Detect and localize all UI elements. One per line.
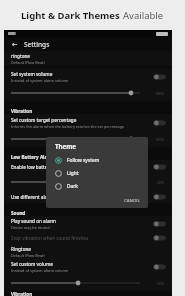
button[interactable]: Enable low battery alarm (4, 160, 172, 174)
button[interactable]: ringtone (4, 51, 172, 66)
button[interactable]: Play sound on alarm (4, 216, 172, 232)
staticText: Play sound on alarm (11, 218, 56, 224)
button[interactable]: Light (46, 167, 148, 180)
staticText: Vibration (11, 291, 33, 296)
staticText: Theme (55, 142, 77, 150)
staticText: Use different alarm (11, 194, 54, 200)
staticText: Low Battery Alarm (11, 154, 54, 160)
staticText: Device may be muted (11, 225, 50, 230)
staticText: Set custom target percentage (11, 117, 77, 123)
staticText: Default (Flow Beat) (11, 60, 45, 65)
button[interactable]: 20% (4, 174, 172, 190)
staticText: Stop vibration when sound finishes (11, 235, 89, 241)
button[interactable]: Back (9, 39, 19, 49)
staticText: Sound (11, 210, 26, 216)
staticText: 50% (157, 281, 165, 286)
staticText: Default (Flow Beat) (11, 253, 45, 258)
button[interactable]: 50% (4, 275, 172, 291)
staticText: Follow system (67, 157, 100, 164)
staticText: 100% (155, 91, 165, 96)
staticText: Settings (24, 40, 50, 49)
staticText: Available (123, 9, 164, 22)
staticText: Enable low battery alarm (11, 164, 66, 170)
button[interactable]: Use different alarm (4, 190, 172, 203)
button[interactable]: Ringtone (4, 244, 172, 259)
staticText: Ringtone (11, 246, 31, 252)
staticText: Instead of system alarm volume (11, 78, 69, 83)
staticText: Instead of system alarm volume (11, 268, 69, 273)
button[interactable]: CANCEL (116, 196, 148, 206)
button[interactable]: Follow system (46, 154, 148, 167)
staticText: Set custom volume (11, 261, 53, 267)
staticText: Light & Dark Themes (21, 9, 123, 22)
staticText: 100% (155, 137, 165, 142)
staticText: Light (67, 170, 79, 177)
button[interactable]: Dark (46, 180, 148, 193)
staticText: ringtone (11, 53, 30, 59)
staticText: CANCEL (124, 198, 140, 204)
staticText: Informs the alarm when the battery reach… (11, 124, 125, 129)
button[interactable]: Set custom volume (4, 259, 172, 275)
button[interactable]: Set custom target percentage (4, 114, 172, 131)
staticText: Dark (67, 183, 78, 190)
button[interactable]: 100% (4, 131, 172, 147)
button[interactable]: 100% (4, 85, 172, 101)
button[interactable]: Set system volume (4, 68, 172, 85)
staticText: Vibration (11, 108, 33, 114)
staticText: Set system volume (11, 71, 53, 77)
staticText: 20% (157, 180, 165, 185)
button[interactable]: Stop vibration when sound finishes (4, 232, 172, 244)
